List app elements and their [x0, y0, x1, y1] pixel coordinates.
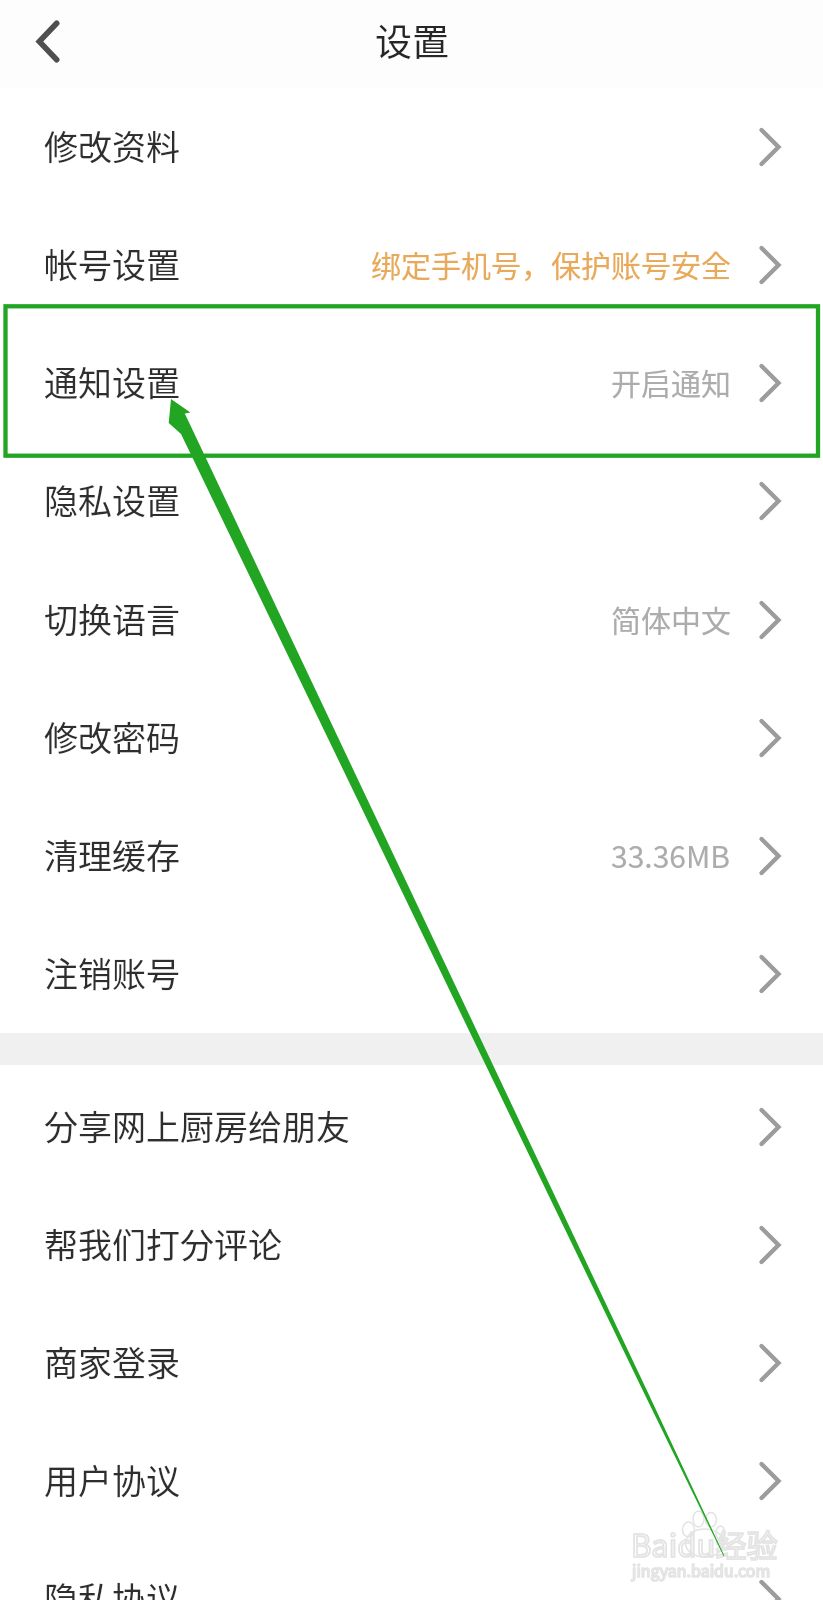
button[interactable]: 帐号设置 — [0, 206, 823, 324]
staticText: 开启通知 — [611, 360, 731, 403]
button[interactable]: 分享网上厨房给朋友 — [0, 1068, 823, 1186]
staticText: 切换语言 — [44, 594, 180, 643]
staticText: 帮我们打分评论 — [44, 1219, 282, 1268]
staticText: 分享网上厨房给朋友 — [44, 1101, 350, 1150]
staticText: 通知设置 — [44, 357, 180, 406]
staticText: 修改资料 — [44, 121, 180, 170]
button[interactable]: 帮我们打分评论 — [0, 1186, 823, 1304]
button[interactable]: 通知设置 — [0, 324, 823, 442]
staticText: 注销账号 — [44, 948, 180, 997]
staticText: 简体中文 — [611, 597, 731, 640]
button[interactable]: 切换语言 — [0, 561, 823, 679]
staticText: 33.36MB — [611, 833, 731, 876]
staticText: 隐私设置 — [44, 475, 180, 524]
staticText: 帐号设置 — [44, 239, 180, 288]
staticText: 商家登录 — [44, 1337, 180, 1386]
staticText: 修改密码 — [44, 712, 180, 761]
staticText: 用户协议 — [44, 1455, 180, 1504]
staticText: 清理缓存 — [44, 830, 180, 879]
button[interactable]: 修改密码 — [0, 679, 823, 797]
staticText: 设置 — [375, 13, 449, 67]
staticText: 绑定手机号，保护账号安全 — [371, 242, 731, 285]
button[interactable]: 用户协议 — [0, 1422, 823, 1540]
button[interactable]: 商家登录 — [0, 1304, 823, 1422]
button[interactable]: 隐私设置 — [0, 442, 823, 560]
button[interactable]: 注销账号 — [0, 915, 823, 1033]
button[interactable]: Back — [11, 7, 85, 81]
button[interactable]: 清理缓存 — [0, 797, 823, 915]
button[interactable]: 隐私协议 — [0, 1540, 823, 1600]
button[interactable]: 修改资料 — [0, 88, 823, 206]
staticText: 隐私协议 — [44, 1573, 180, 1600]
